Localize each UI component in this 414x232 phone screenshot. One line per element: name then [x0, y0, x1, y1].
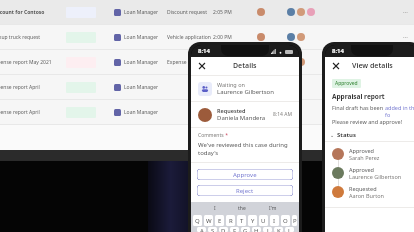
staticText: Reject — [236, 187, 254, 195]
button[interactable]: U — [259, 215, 268, 226]
staticText: E — [218, 217, 222, 225]
staticText: added in the fo — [385, 104, 414, 118]
button[interactable]: P — [292, 215, 297, 226]
staticText: Expense report May 2021 — [0, 59, 52, 66]
button[interactable]: Expense report April 2021 — [0, 75, 414, 99]
staticText: Status — [337, 131, 357, 139]
staticText: 8:14 — [198, 47, 210, 55]
staticText: D — [221, 227, 226, 232]
staticText: K — [277, 227, 281, 232]
staticText: Loan Manager — [124, 59, 159, 66]
button[interactable]: Q — [193, 215, 202, 226]
staticText: L — [288, 227, 292, 232]
staticText: Expense report April 2021 — [0, 84, 52, 91]
staticText: S — [211, 227, 215, 232]
staticText: Appraisal report — [332, 92, 385, 101]
button[interactable]: Requested — [332, 185, 414, 199]
button[interactable]: Waiting on — [198, 81, 292, 96]
staticText: U — [261, 217, 266, 225]
button[interactable]: H — [252, 227, 261, 232]
button[interactable]: T — [237, 215, 246, 226]
button[interactable]: Y — [248, 215, 257, 226]
staticText: Approved — [335, 80, 358, 87]
staticText: Pickup truck request — [0, 34, 52, 41]
button[interactable]: S — [208, 227, 217, 232]
staticText — [213, 84, 257, 91]
staticText: Final draft has been — [332, 104, 385, 111]
button[interactable]: L — [285, 227, 294, 232]
button[interactable]: Close — [331, 61, 341, 71]
staticText: Comments — [198, 132, 224, 139]
staticText: 2:05 PM — [213, 9, 257, 16]
staticText: 8:14 — [332, 47, 344, 55]
staticText: W — [206, 217, 212, 225]
button[interactable]: Expense report May 2021 — [0, 50, 414, 74]
staticText: R — [229, 217, 233, 225]
staticText: ⌄ — [330, 132, 335, 138]
button[interactable]: Pickup truck request — [0, 25, 414, 49]
staticText: View details — [352, 61, 393, 71]
staticText: Yesterday 9:10 AM — [213, 59, 257, 66]
button[interactable]: Approved — [332, 147, 414, 161]
staticText: J — [267, 227, 269, 232]
staticText — [213, 109, 257, 116]
button[interactable]: Approved — [332, 166, 414, 180]
button[interactable]: G — [241, 227, 250, 232]
staticText: Loan Manager — [124, 9, 159, 16]
staticText: 8:14 AM — [273, 111, 292, 118]
button[interactable]: Close — [197, 61, 207, 71]
staticText: Requested — [349, 185, 377, 192]
button[interactable]: I'm — [269, 205, 277, 212]
staticText: Waiting on — [217, 81, 245, 88]
staticText: Approve — [233, 171, 257, 179]
staticText: O — [283, 217, 288, 225]
button[interactable]: J — [263, 227, 272, 232]
staticText: Expense report — [167, 59, 213, 66]
button[interactable]: W — [204, 215, 213, 226]
staticText: Requested — [217, 107, 246, 114]
button[interactable]: I — [270, 215, 279, 226]
staticText — [167, 84, 213, 91]
staticText: Details — [233, 61, 257, 71]
staticText: T — [240, 217, 244, 225]
staticText: H — [254, 227, 259, 232]
staticText: F — [233, 227, 237, 232]
staticText: Loan Manager — [124, 84, 159, 91]
button[interactable]: Approve — [197, 169, 293, 180]
staticText: G — [243, 227, 248, 232]
staticText: Discount for Contoso — [0, 9, 52, 16]
button[interactable]: D — [219, 227, 228, 232]
button[interactable]: Expense report April 2021 — [0, 100, 414, 124]
staticText: We've reviewed this case during today's — [198, 141, 292, 157]
button[interactable]: Discount for Contoso — [0, 0, 414, 24]
button[interactable]: E — [215, 215, 224, 226]
button[interactable]: Reject — [197, 185, 293, 196]
button[interactable]: F — [230, 227, 239, 232]
staticText: Please review and approve! — [332, 118, 403, 125]
button[interactable]: ⌄ — [330, 131, 357, 139]
button[interactable]: the — [238, 205, 246, 212]
staticText: Aaron Burton — [349, 192, 384, 199]
staticText: Loan Manager — [124, 34, 159, 41]
staticText: Expense report April 2021 — [0, 109, 52, 116]
button[interactable]: I — [214, 205, 216, 212]
staticText: Laurence Gilbertson — [217, 88, 274, 96]
staticText: I — [273, 217, 276, 225]
button[interactable]: O — [281, 215, 290, 226]
button[interactable]: K — [274, 227, 283, 232]
button[interactable]: Requested — [198, 107, 292, 122]
button[interactable]: R — [226, 215, 235, 226]
staticText: Approved — [349, 166, 374, 173]
staticText: 2:00 PM — [213, 34, 257, 41]
staticText: ··· — [403, 33, 408, 41]
staticText: Q — [195, 217, 200, 225]
staticText: Approved — [349, 147, 374, 154]
staticText: A — [200, 227, 204, 232]
staticText: Sarah Perez — [349, 154, 380, 161]
staticText: Loan Manager — [124, 109, 159, 116]
staticText: Vehicle application — [167, 34, 213, 41]
button[interactable]: A — [197, 227, 206, 232]
staticText: P — [293, 217, 297, 225]
staticText: Y — [251, 217, 255, 225]
